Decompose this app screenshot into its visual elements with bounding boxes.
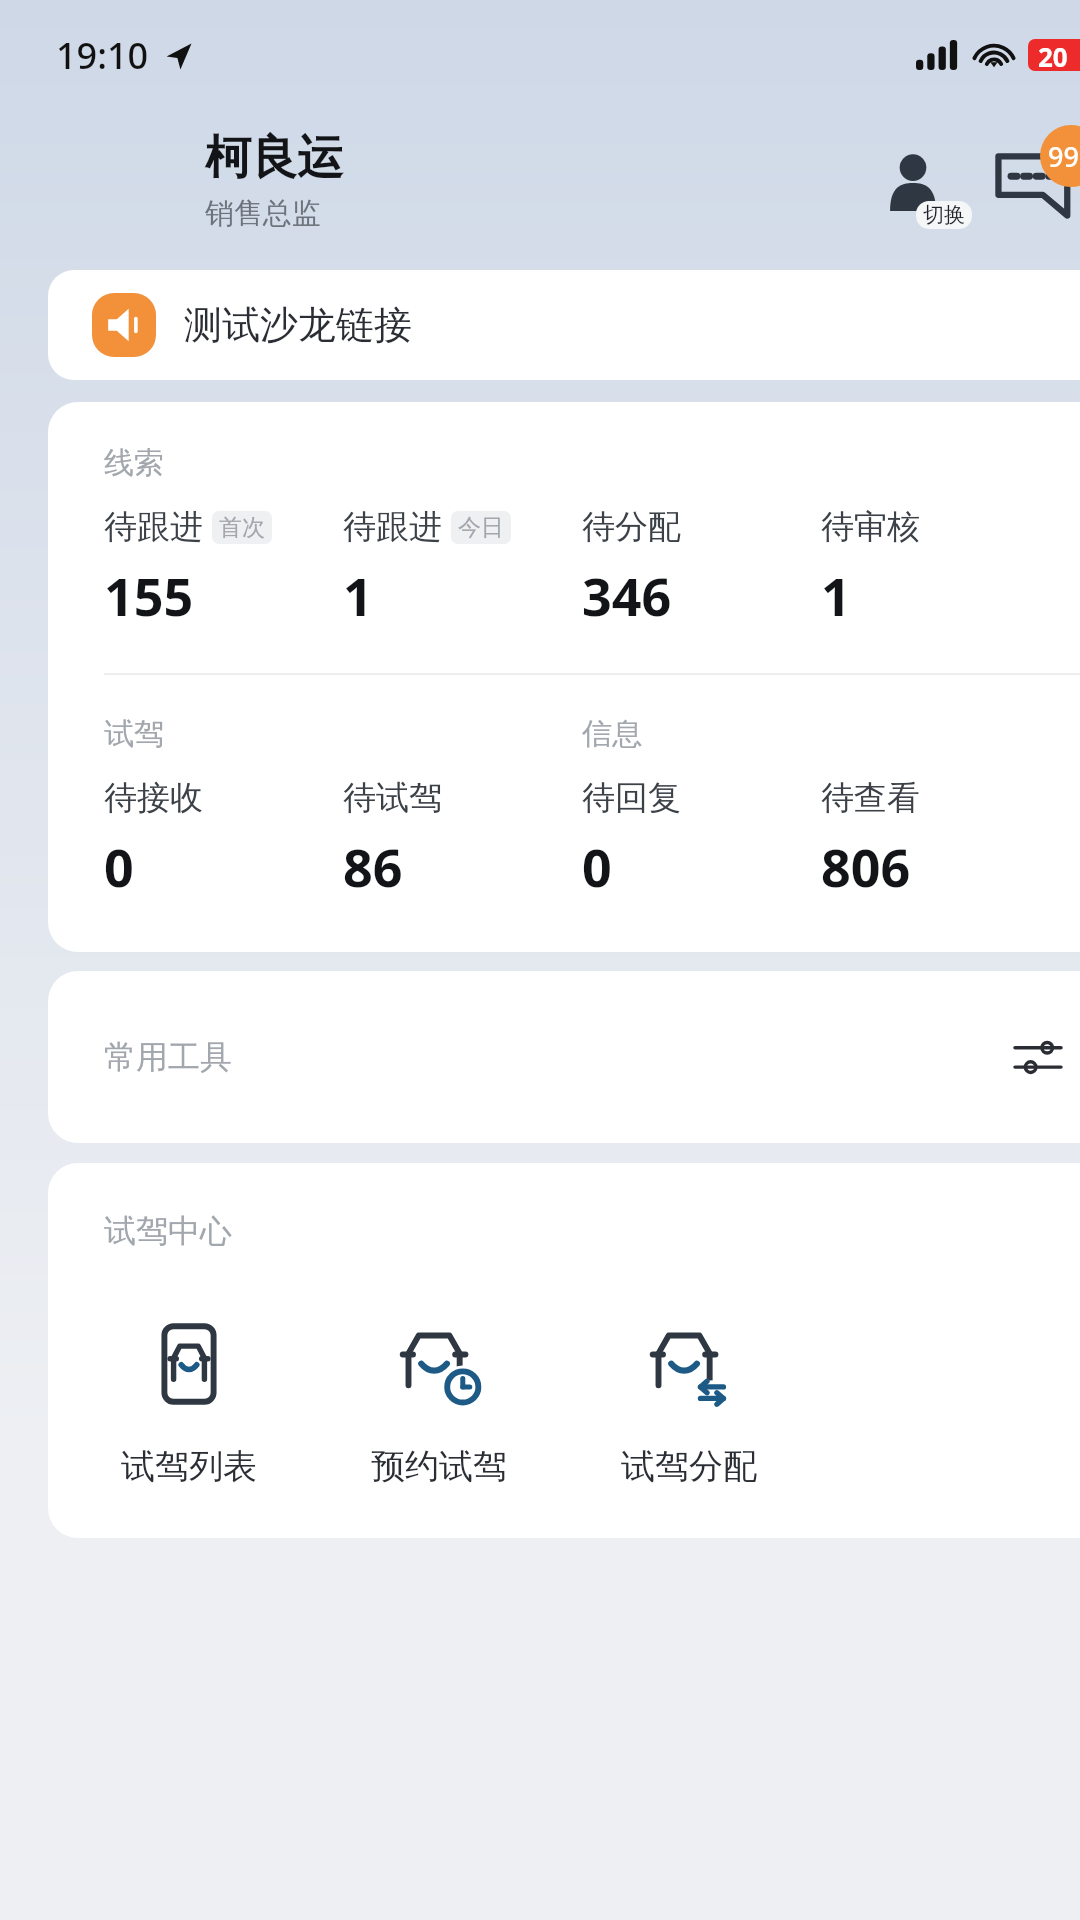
staticText: 99+ — [1048, 138, 1080, 175]
button[interactable]: 测试沙龙链接 — [48, 270, 1080, 380]
staticText: 待接收 — [104, 777, 203, 819]
staticText: 今日 — [458, 513, 504, 542]
staticText: 待审核 — [821, 506, 920, 548]
staticText: 待分配 — [582, 506, 681, 548]
button[interactable]: 待跟进 — [343, 506, 582, 631]
staticText: 试驾 — [104, 715, 582, 753]
button[interactable]: 试驾分配 — [564, 1323, 814, 1488]
staticText: 1 — [821, 560, 851, 631]
button[interactable]: 待分配 — [582, 506, 821, 631]
button[interactable]: 切换账号 — [868, 135, 958, 225]
other: 设置 — [1006, 1025, 1070, 1089]
staticText: 待跟进 — [104, 506, 203, 548]
staticText: 1 — [343, 560, 373, 631]
staticText: 测试沙龙链接 — [184, 301, 412, 349]
staticText: 常用工具 — [104, 1037, 232, 1077]
staticText: 待跟进 — [343, 506, 442, 548]
staticText: 19:10 — [56, 31, 149, 80]
staticText: 346 — [582, 560, 672, 631]
staticText: 155 — [104, 560, 194, 631]
button[interactable]: 待试驾 — [343, 777, 582, 902]
staticText: 柯良运 — [205, 129, 343, 187]
button[interactable]: 常用工具 — [48, 971, 1080, 1143]
staticText: 销售总监 — [205, 195, 321, 232]
staticText: 待试驾 — [343, 777, 442, 819]
button[interactable]: 消息 — [982, 131, 1080, 229]
staticText: 0 — [582, 831, 612, 902]
button[interactable]: 待查看 — [821, 777, 1060, 902]
staticText: 20 — [1038, 39, 1068, 71]
staticText: 86 — [343, 831, 403, 902]
staticText: 预约试驾 — [371, 1445, 507, 1488]
staticText: 信息 — [582, 715, 1060, 753]
button[interactable]: 待接收 — [104, 777, 343, 902]
staticText: 线索 — [104, 444, 164, 482]
button[interactable]: 待跟进 — [104, 506, 343, 631]
staticText: 试驾列表 — [121, 1445, 257, 1488]
button[interactable]: 试驾列表 — [64, 1323, 314, 1488]
button[interactable]: 待审核 — [821, 506, 1060, 631]
button[interactable]: 待回复 — [582, 777, 821, 902]
button[interactable]: 预约试驾 — [314, 1323, 564, 1488]
staticText: 试驾中心 — [104, 1211, 232, 1251]
staticText: 806 — [821, 831, 911, 902]
staticText: 首次 — [219, 513, 265, 542]
staticText: 切换 — [923, 202, 965, 228]
staticText: 0 — [104, 831, 134, 902]
staticText: 待回复 — [582, 777, 681, 819]
staticText: 待查看 — [821, 777, 920, 819]
staticText: 试驾分配 — [621, 1445, 757, 1488]
